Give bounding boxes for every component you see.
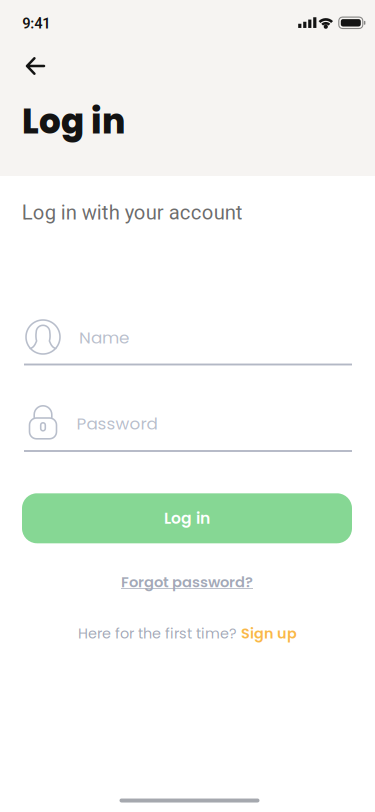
button[interactable]: Password (25, 400, 355, 444)
button[interactable]: Sign up (241, 619, 297, 648)
staticText: Sign up (241, 623, 297, 644)
button[interactable]: Log in (22, 493, 352, 543)
staticText: Here for the first time? (78, 623, 237, 644)
staticText: Log in (22, 98, 125, 145)
button[interactable]: Name (25, 314, 355, 358)
staticText: Log in (164, 507, 210, 529)
staticText: 9:41 (22, 15, 50, 32)
staticText: Forgot password? (121, 572, 253, 592)
button[interactable]: Forgot password? (121, 568, 253, 596)
staticText: Name (79, 326, 129, 349)
button[interactable]: Back (18, 50, 52, 82)
staticText: Password (76, 412, 157, 435)
staticText: Log in with your account (22, 201, 243, 224)
